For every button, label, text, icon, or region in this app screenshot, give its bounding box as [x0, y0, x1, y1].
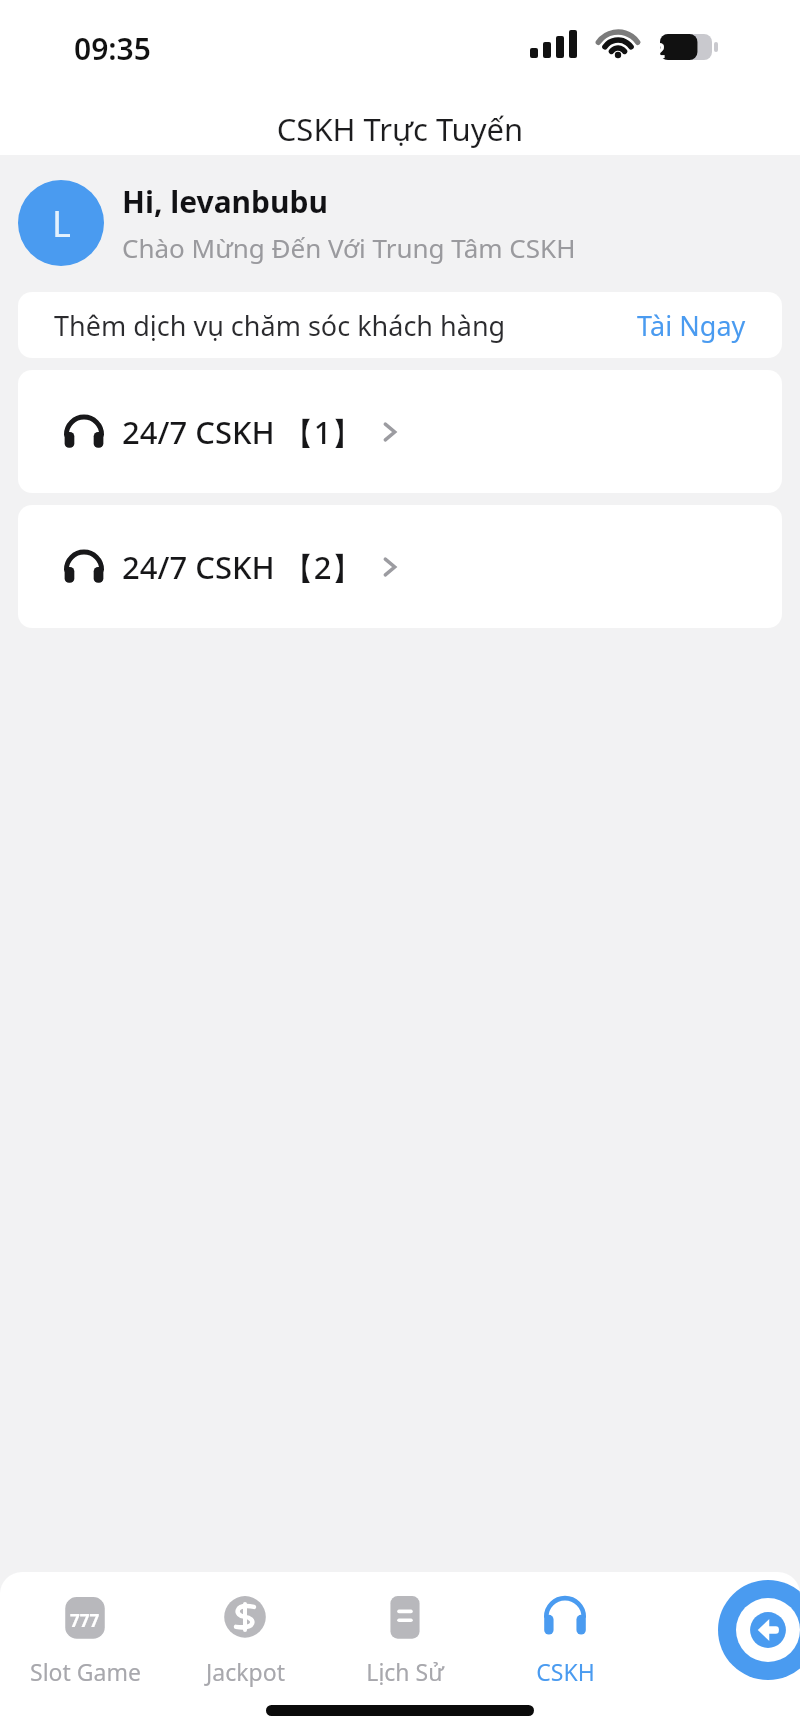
staticText: Jackpot [206, 1656, 285, 1687]
staticText: CSKH Trực Tuyến [0, 108, 800, 150]
staticText: 09:35 [74, 28, 151, 69]
button[interactable]: L [18, 180, 782, 266]
staticText: 72 [640, 34, 666, 64]
button[interactable]: Thêm dịch vụ chăm sóc khách hàng [18, 292, 782, 358]
button[interactable]: 24/7 CSKH 【1】 [18, 370, 782, 493]
staticText: Tài Ngay [637, 307, 746, 344]
staticText: L [52, 199, 71, 248]
staticText: 777 [70, 1609, 100, 1632]
button[interactable]: 777 [10, 1590, 160, 1691]
staticText: 24/7 CSKH 【2】 [122, 546, 363, 588]
button[interactable]: 24/7 CSKH 【2】 [18, 505, 782, 628]
staticText: Chào Mừng Đến Với Trung Tâm CSKH [122, 230, 576, 265]
button[interactable]: Quay lại [718, 1580, 800, 1680]
staticText: Slot Game [30, 1656, 141, 1687]
staticText: CSKH [536, 1656, 595, 1687]
staticText: Lịch Sử [366, 1656, 444, 1687]
staticText: Thêm dịch vụ chăm sóc khách hàng [54, 307, 506, 344]
button[interactable]: Jackpot [170, 1590, 320, 1691]
staticText: Hi, levanbubu [122, 181, 329, 222]
button[interactable]: Lịch Sử [330, 1590, 480, 1691]
staticText: 24/7 CSKH 【1】 [122, 411, 363, 453]
button[interactable]: CSKH [490, 1590, 640, 1691]
